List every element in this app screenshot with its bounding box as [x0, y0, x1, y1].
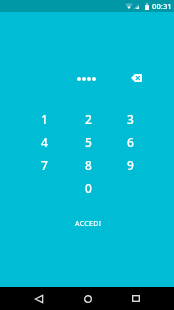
button[interactable]: Back [25, 287, 53, 310]
button[interactable]: Backspace [125, 68, 147, 87]
staticText: 9 [127, 157, 134, 173]
button[interactable]: ACCEDI [68, 215, 108, 233]
button[interactable]: 4 [24, 130, 64, 153]
button[interactable]: 3 [110, 107, 150, 130]
staticText: 3 [127, 111, 134, 127]
staticText: 00:31 [152, 1, 172, 11]
staticText: 8 [85, 157, 92, 173]
button[interactable]: 2 [68, 107, 108, 130]
button[interactable]: Recents [122, 287, 150, 310]
staticText: 7 [41, 157, 48, 173]
staticText: 0 [85, 180, 92, 196]
staticText: 6 [127, 134, 134, 150]
staticText: 5 [85, 134, 92, 150]
button[interactable]: 1 [24, 107, 64, 130]
button[interactable]: 6 [110, 130, 150, 153]
button[interactable]: 8 [68, 153, 108, 176]
button[interactable]: 7 [24, 153, 64, 176]
staticText: ACCEDI [75, 219, 102, 229]
button[interactable]: 5 [68, 130, 108, 153]
staticText: 4 [41, 134, 48, 150]
staticText: 2 [85, 111, 92, 127]
button[interactable]: Home [74, 287, 102, 310]
button[interactable]: 0 [68, 176, 108, 199]
staticText: 1 [41, 111, 48, 127]
button[interactable]: 9 [110, 153, 150, 176]
